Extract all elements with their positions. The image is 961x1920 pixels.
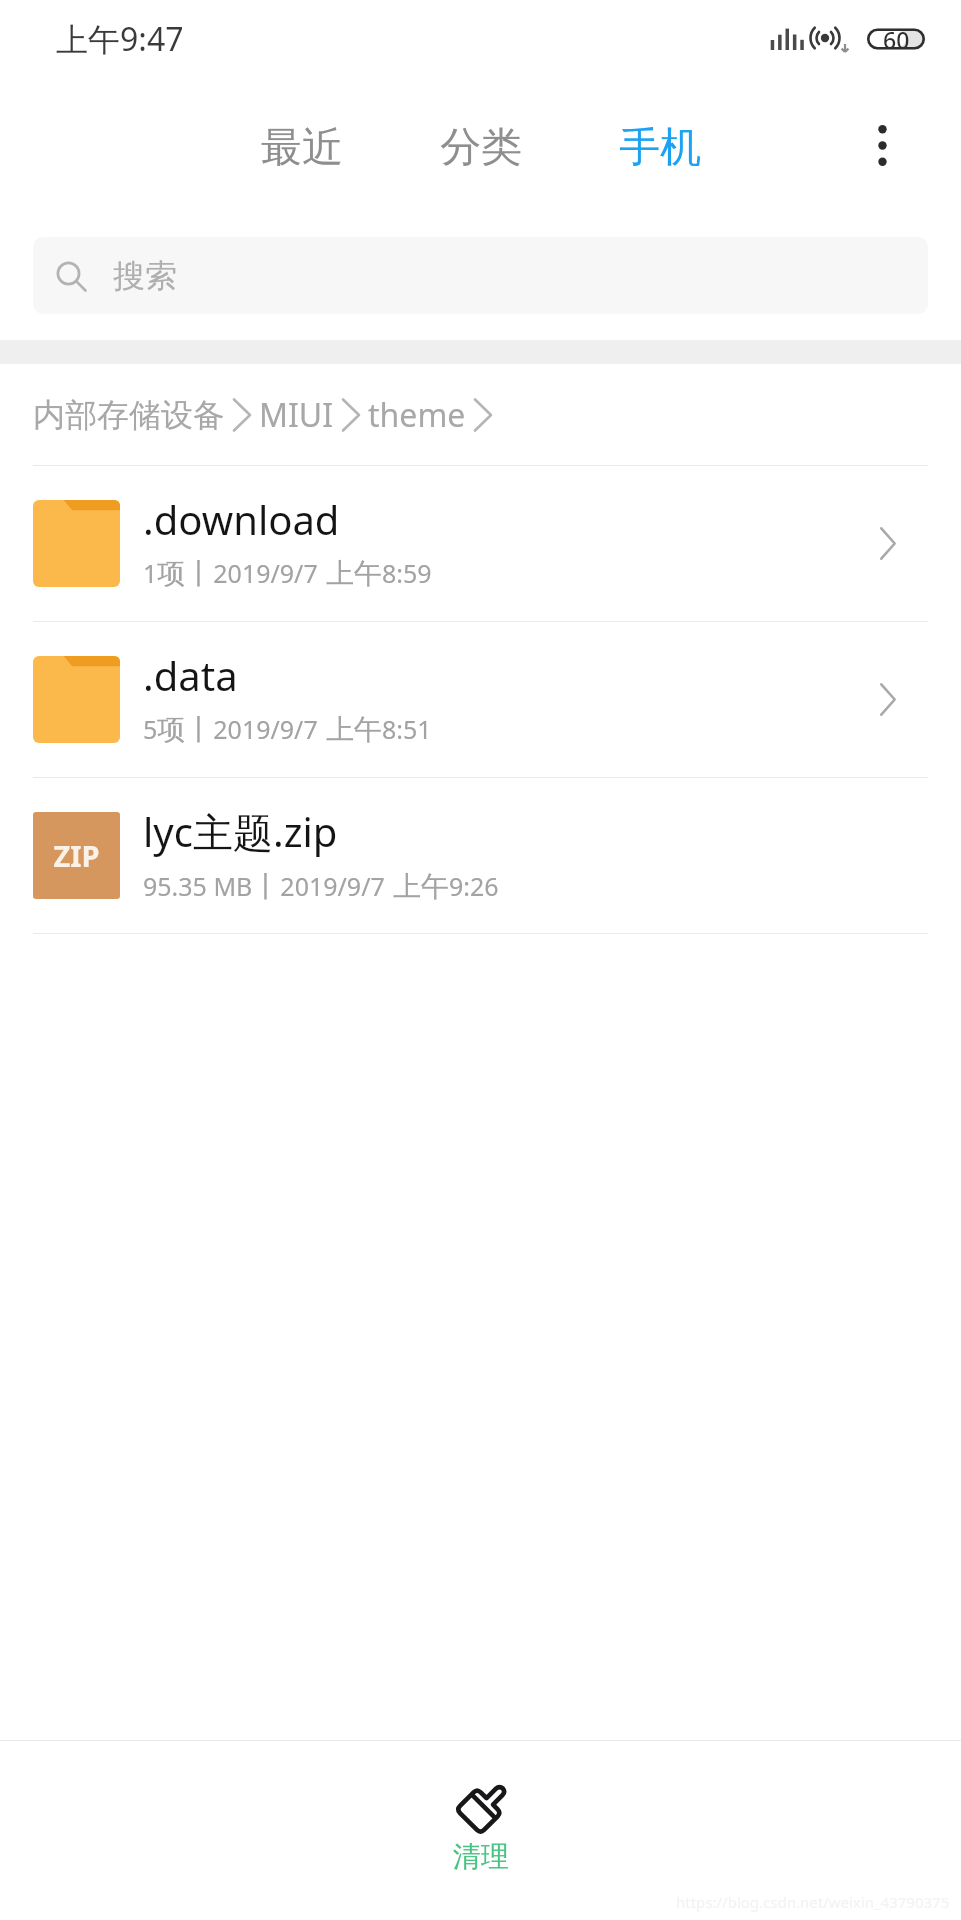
staticText: 内部存储设备 <box>33 395 225 435</box>
staticText: 95.35 MB丨2019/9/7 上午9:26 <box>143 869 499 904</box>
button[interactable]: 清理 Clean <box>387 1741 575 1878</box>
button[interactable]: More options <box>851 114 913 176</box>
staticText: lyc主题.zip <box>143 804 338 859</box>
staticText: .download <box>143 492 340 546</box>
button[interactable]: 搜索 <box>33 237 928 314</box>
staticText: .data <box>143 648 238 702</box>
staticText: 最近 <box>261 122 343 174</box>
button[interactable]: .data <box>0 622 961 777</box>
other: Status icons <box>766 0 925 78</box>
button[interactable]: 内部存储设备 <box>33 393 500 437</box>
staticText: theme <box>368 393 466 437</box>
staticText: 5项丨2019/9/7 上午8:51 <box>143 712 432 747</box>
staticText: 上午9:47 <box>56 17 184 61</box>
button[interactable]: 最近 <box>251 97 353 193</box>
staticText: 清理 <box>453 1839 509 1874</box>
staticText: 60 <box>883 24 910 55</box>
staticText: 分类 <box>440 122 522 174</box>
staticText: 手机 <box>619 122 701 174</box>
button[interactable]: ZIP <box>0 778 961 933</box>
staticText: https://blog.csdn.net/weixin_43790375 <box>676 1892 950 1912</box>
button[interactable]: 分类 <box>430 97 532 193</box>
button[interactable]: .download <box>0 466 961 621</box>
button[interactable]: 手机 <box>609 97 711 193</box>
staticText: ZIP <box>53 836 100 875</box>
staticText: 1项丨2019/9/7 上午8:59 <box>143 556 432 591</box>
staticText: 搜索 <box>113 256 177 296</box>
staticText: MIUI <box>259 393 334 437</box>
